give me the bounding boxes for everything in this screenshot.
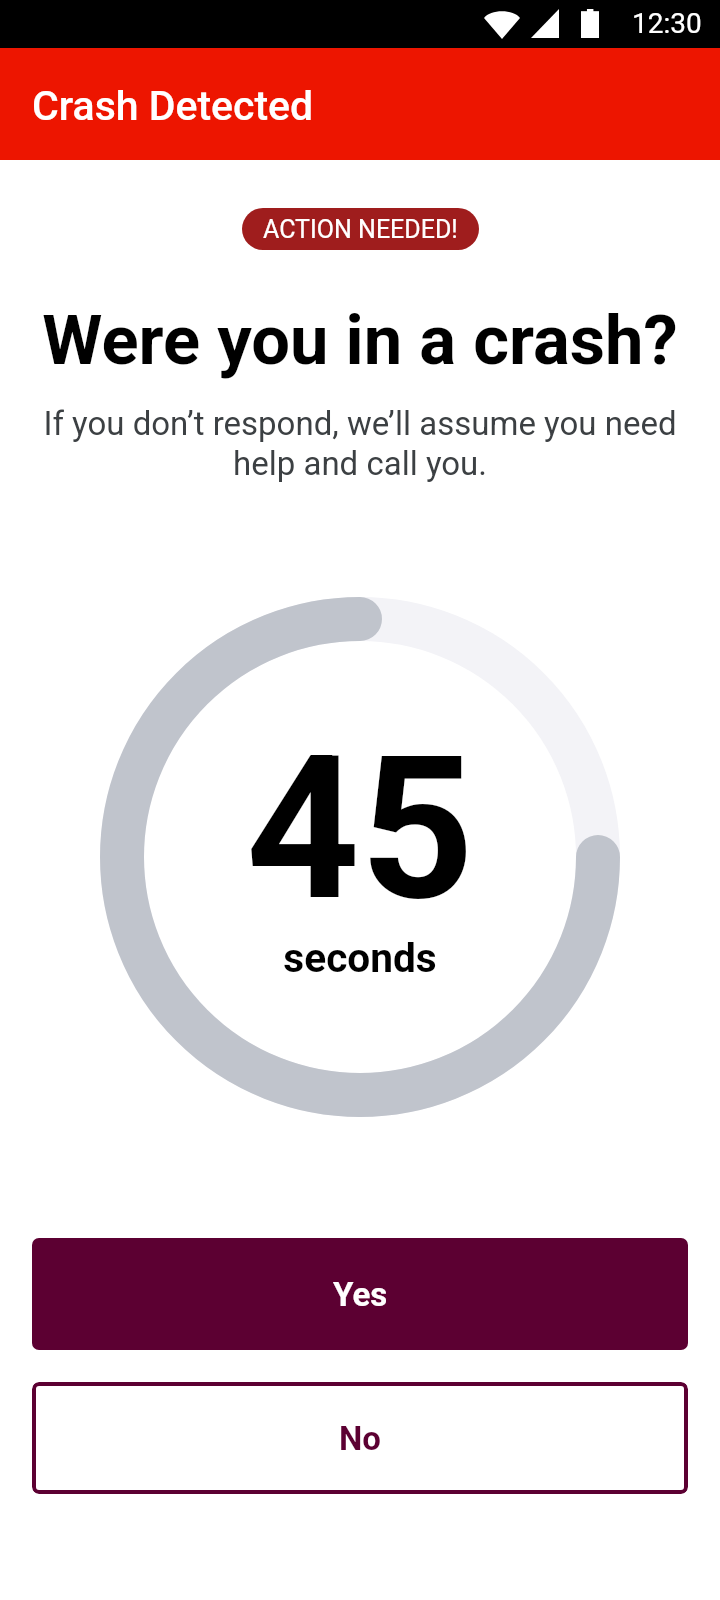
staticText: If you don’t respond, we’ll assume you n… — [24, 404, 696, 484]
staticText: ACTION NEEDED! — [263, 215, 458, 244]
button[interactable]: ACTION NEEDED! — [242, 208, 479, 250]
staticText: 45 — [0, 712, 720, 945]
staticText: No — [339, 1419, 381, 1458]
button[interactable]: No — [32, 1382, 688, 1494]
button[interactable]: Yes — [32, 1238, 688, 1350]
other: Battery full — [581, 9, 599, 38]
staticText: seconds — [0, 934, 720, 982]
staticText: Crash Detected — [32, 82, 314, 130]
staticText: 12:30 — [632, 7, 702, 40]
staticText: Yes — [333, 1275, 388, 1314]
staticText: Were you in a crash? — [0, 300, 720, 381]
other: Mobile signal — [531, 9, 559, 38]
other: Wi-Fi signal full — [484, 9, 520, 39]
other: 45 seconds remaining — [100, 597, 620, 1117]
